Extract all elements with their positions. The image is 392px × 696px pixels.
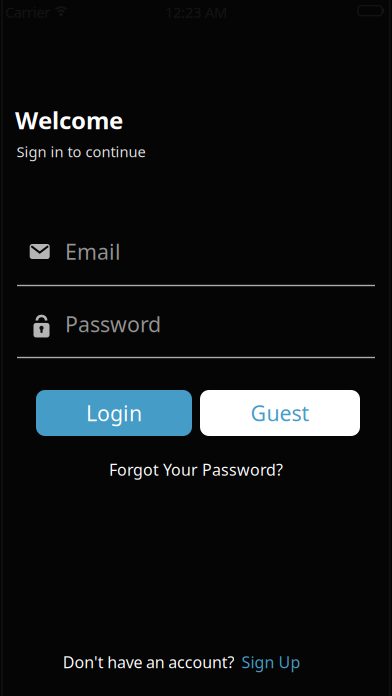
staticText: Guest [250, 399, 309, 427]
staticText: Password [65, 310, 161, 338]
button[interactable]: Guest [200, 390, 360, 436]
staticText: Sign Up [241, 651, 300, 673]
staticText: Don't have an account? [63, 651, 234, 673]
button[interactable]: Forgot Your Password? [109, 459, 283, 480]
staticText: Forgot Your Password? [109, 459, 283, 480]
staticText: Carrier [5, 2, 50, 22]
button[interactable]: Sign Up [241, 651, 300, 673]
button[interactable]: Login [36, 390, 192, 436]
staticText: Welcome [15, 104, 123, 136]
button[interactable]: Password [0, 300, 392, 362]
staticText: Email [65, 237, 121, 266]
staticText: Sign in to continue [16, 142, 145, 161]
staticText: Login [86, 399, 142, 427]
staticText: 12:23 AM [165, 2, 227, 22]
button[interactable]: Email [0, 228, 392, 290]
